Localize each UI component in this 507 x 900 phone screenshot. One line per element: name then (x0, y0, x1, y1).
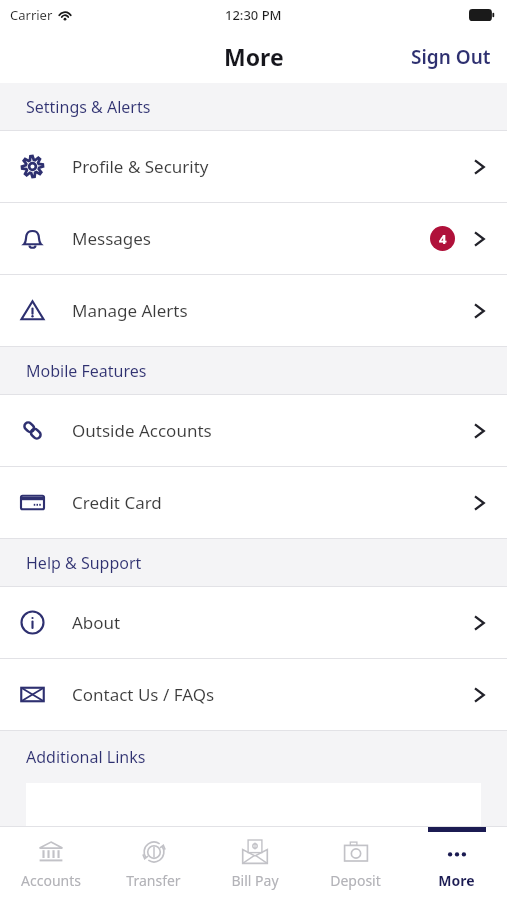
staticText: Bill Pay (231, 871, 279, 890)
staticText: Credit Card (72, 491, 471, 514)
button[interactable]: Manage Alerts (0, 275, 507, 346)
staticText: 12:30 PM (225, 6, 282, 24)
button[interactable]: Transfer (102, 827, 204, 900)
staticText: Additional Links (26, 746, 146, 768)
staticText: Manage Alerts (72, 299, 471, 322)
button[interactable]: Messages (0, 203, 507, 274)
button[interactable]: About (0, 587, 507, 658)
button[interactable]: Accounts (0, 827, 102, 900)
staticText: More (438, 871, 475, 890)
staticText: Deposit (330, 871, 381, 890)
staticText: Profile & Security (72, 155, 471, 178)
staticText: Contact Us / FAQs (72, 683, 471, 706)
button[interactable]: Credit Card (0, 467, 507, 538)
staticText: About (72, 611, 471, 634)
staticText: Sign Out (411, 44, 491, 70)
staticText: 4 (439, 230, 447, 248)
staticText: Help & Support (26, 552, 142, 574)
staticText: Carrier (10, 6, 53, 24)
button[interactable]: More (406, 827, 507, 900)
staticText: Transfer (126, 871, 181, 890)
staticText: Mobile Features (26, 360, 147, 382)
staticText: Messages (72, 227, 430, 250)
button[interactable]: Outside Accounts (0, 395, 507, 466)
button[interactable]: Profile & Security (0, 131, 507, 202)
staticText: Settings & Alerts (26, 96, 151, 118)
staticText: More (224, 41, 284, 72)
button[interactable]: Deposit (305, 827, 406, 900)
staticText: Outside Accounts (72, 419, 471, 442)
button[interactable]: Sign Out (395, 34, 507, 80)
staticText: Accounts (21, 871, 81, 890)
button[interactable]: Contact Us / FAQs (0, 659, 507, 730)
button[interactable]: Bill Pay (204, 827, 305, 900)
